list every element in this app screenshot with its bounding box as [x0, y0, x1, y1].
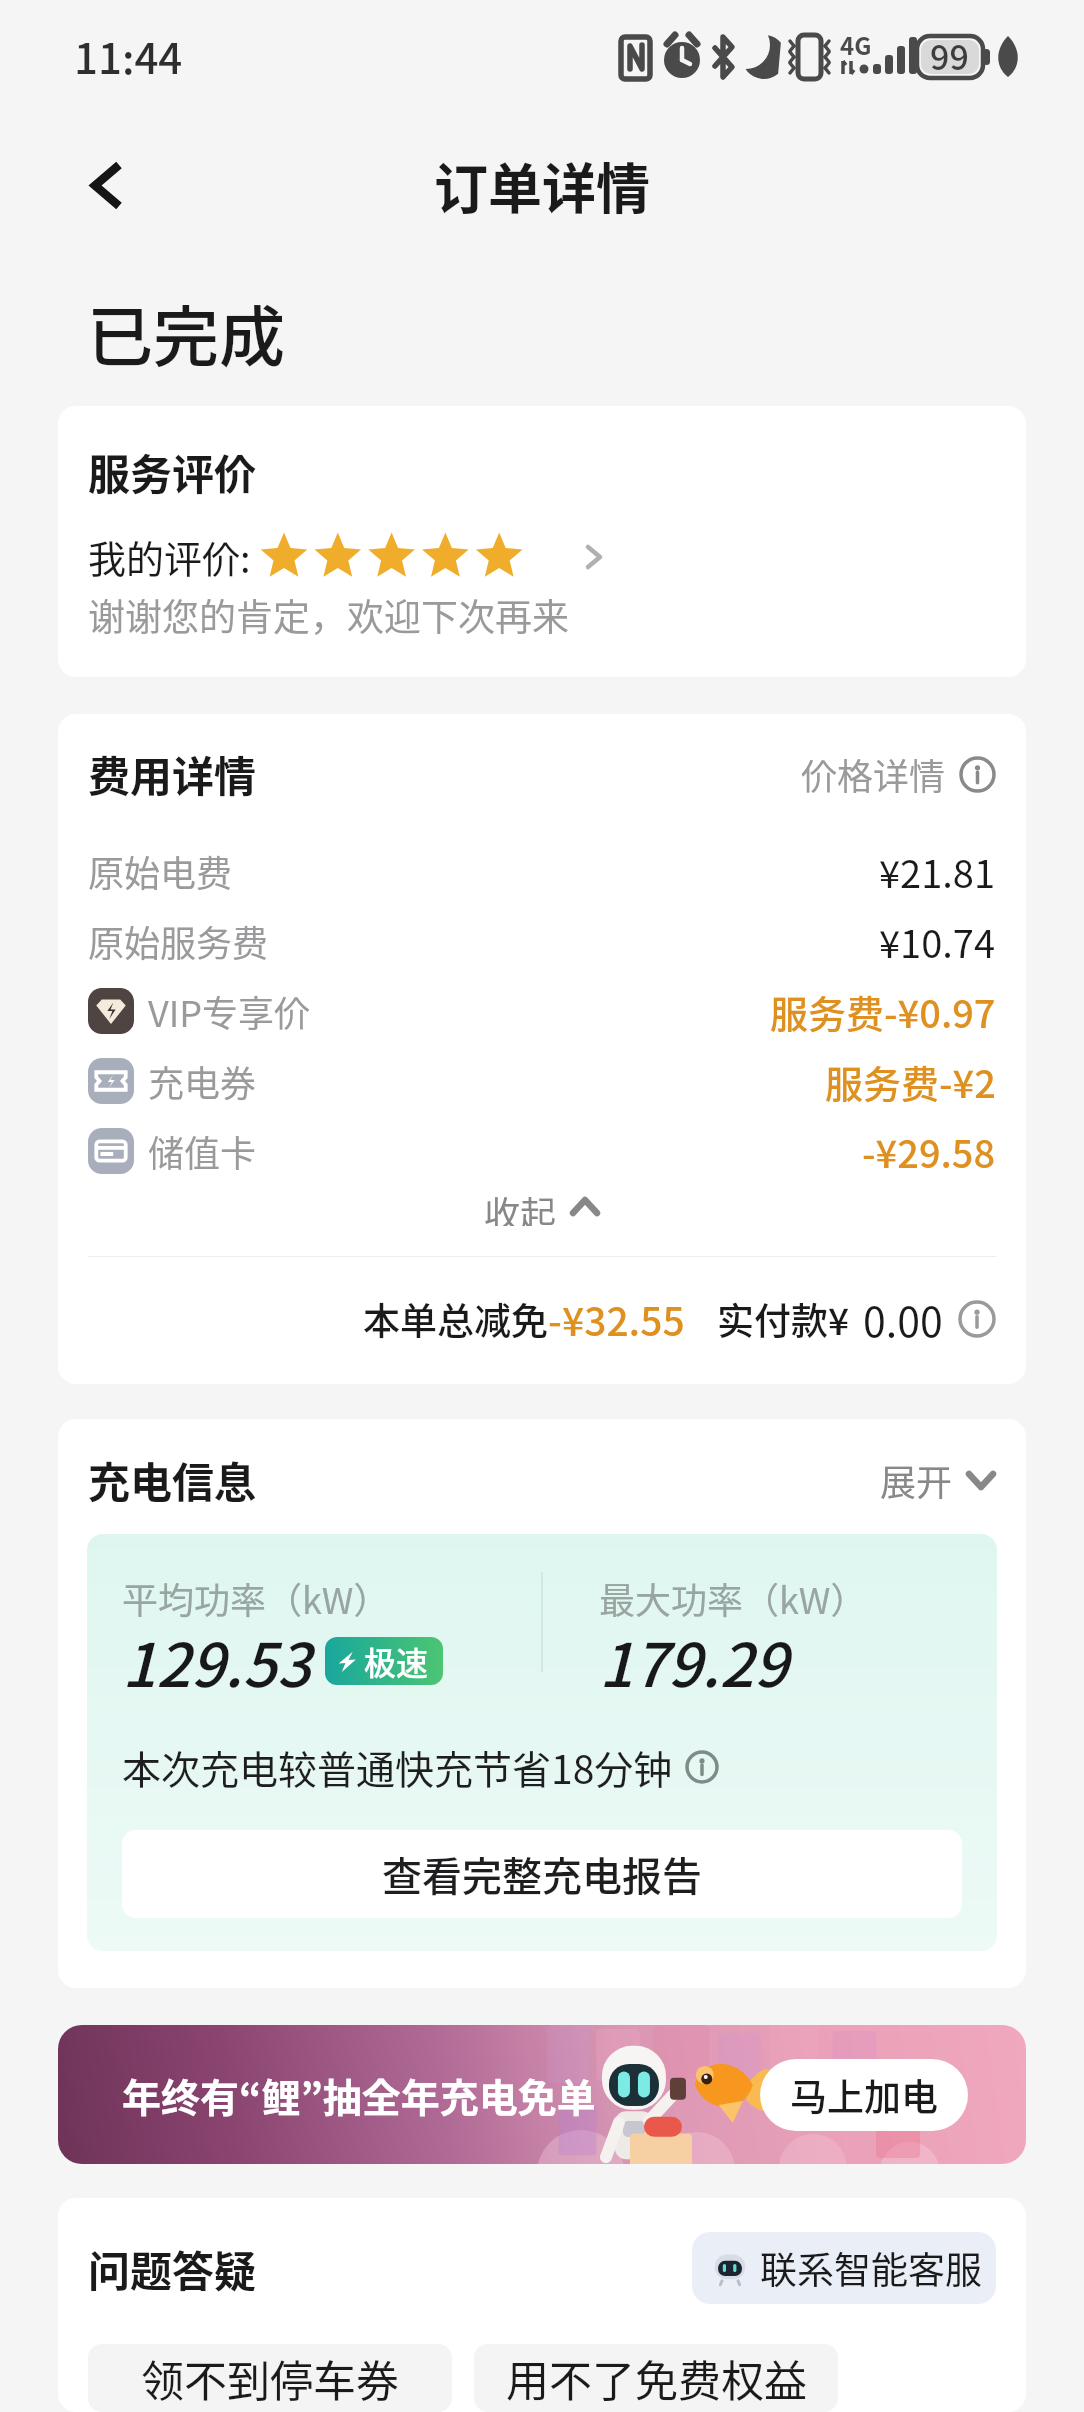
staticText: 179.29 — [599, 1617, 788, 1704]
staticText: VIP专享价 — [148, 985, 311, 1037]
button[interactable]: 收起 — [88, 1186, 996, 1226]
staticText: 马上加电 — [790, 2068, 938, 2122]
staticText: 已完成 — [87, 284, 285, 380]
staticText: 原始电费 — [88, 845, 233, 897]
staticText: 价格详情 — [801, 748, 946, 800]
staticText: 129.53 — [122, 1617, 311, 1704]
staticText: 费用详情 — [88, 743, 257, 804]
staticText: 储值卡 — [148, 1125, 257, 1177]
staticText: 收起 — [484, 1186, 557, 1226]
staticText: 11:44 — [74, 25, 183, 86]
button[interactable]: 价格详情 — [801, 748, 996, 800]
staticText: 问题答疑 — [88, 2238, 257, 2299]
staticText: 充电信息 — [88, 1449, 257, 1510]
staticText: 充电券 — [148, 1055, 257, 1107]
staticText: 服务费-¥2 — [825, 1054, 996, 1109]
staticText: 最大功率（kW） — [599, 1572, 867, 1624]
staticText: 订单详情 — [434, 146, 650, 224]
staticText: ¥21.81 — [879, 844, 996, 899]
button[interactable]: 用不了免费权益 — [474, 2344, 838, 2412]
staticText: 原始服务费 — [88, 915, 269, 967]
staticText: 服务费-¥0.97 — [770, 984, 996, 1039]
button[interactable]: 查看完整充电报告 — [122, 1830, 962, 1918]
button[interactable]: 年终有“鲤”抽全年充电免单 — [58, 2025, 1026, 2164]
staticText: 展开 — [880, 1454, 953, 1506]
staticText: 用不了免费权益 — [506, 2347, 807, 2409]
staticText: -¥29.58 — [862, 1124, 996, 1179]
staticText: 服务评价 — [88, 441, 257, 502]
staticText: 联系智能客服 — [760, 2241, 982, 2295]
staticText: 0.00 — [863, 1289, 943, 1348]
button[interactable]: Back — [62, 140, 152, 230]
staticText: 99 — [930, 31, 969, 80]
staticText: 本单总减免 — [363, 1292, 548, 1346]
staticText: 查看完整充电报告 — [382, 1845, 702, 1903]
staticText: 谢谢您的肯定，欢迎下次再来 — [88, 588, 569, 642]
button[interactable]: 服务评价 — [58, 406, 1026, 677]
staticText: 实付款¥ — [717, 1292, 850, 1346]
staticText: 平均功率（kW） — [122, 1572, 390, 1624]
staticText: 4G — [840, 27, 872, 62]
button[interactable]: 联系智能客服 — [692, 2232, 996, 2304]
staticText: -¥32.55 — [548, 1291, 685, 1347]
button[interactable]: 领不到停车券 — [88, 2344, 452, 2412]
staticText: 我的评价: — [88, 529, 251, 584]
staticText: ¥10.74 — [879, 914, 996, 969]
staticText: 领不到停车券 — [141, 2347, 399, 2409]
staticText: 本次充电较普通快充节省18分钟 — [122, 1739, 673, 1795]
button[interactable]: 展开 — [880, 1454, 996, 1506]
staticText: 极速 — [364, 1638, 429, 1684]
staticText: 年终有“鲤”抽全年充电免单 — [122, 2067, 596, 2123]
